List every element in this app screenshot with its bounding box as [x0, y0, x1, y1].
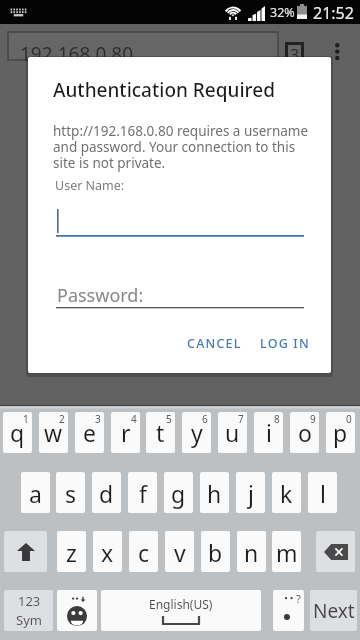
staticText: u [225, 417, 240, 448]
button[interactable]: LOG IN [254, 330, 316, 356]
staticText: 0 [346, 412, 352, 426]
staticText: h [207, 478, 222, 509]
button[interactable]: 8 [254, 412, 283, 453]
button[interactable]: v [165, 531, 194, 572]
staticText: Authentication Required [53, 77, 275, 103]
staticText: l [320, 478, 326, 509]
staticText: English(US) [149, 596, 213, 612]
button[interactable]: 5 [146, 412, 175, 453]
staticText: 4 [131, 412, 137, 426]
staticText: s [65, 478, 77, 509]
staticText: f [139, 478, 147, 509]
staticText: 6 [202, 412, 208, 426]
staticText: 21:52 [313, 2, 354, 24]
button[interactable]: k [272, 472, 301, 513]
button[interactable]: Password: [56, 277, 304, 310]
staticText: y [191, 417, 203, 448]
staticText: 32% [270, 4, 295, 21]
button[interactable]: z [57, 531, 86, 572]
staticText: d [99, 478, 114, 509]
staticText: j [248, 478, 254, 509]
button[interactable]: Shift [4, 531, 47, 572]
staticText: m [276, 537, 298, 568]
staticText: q [10, 417, 25, 448]
button[interactable]: Emoji [57, 590, 97, 631]
staticText: 3 [290, 44, 300, 59]
staticText: v [174, 537, 186, 568]
button[interactable]: c [129, 531, 158, 572]
staticText: i [266, 417, 272, 448]
staticText: z [66, 537, 77, 568]
staticText: a [29, 478, 42, 509]
staticText: 123 [18, 592, 41, 610]
staticText: g [171, 478, 186, 509]
staticText: c [138, 537, 150, 568]
staticText: CANCEL [187, 335, 242, 352]
button[interactable]: Space [101, 590, 261, 631]
staticText: x [101, 537, 114, 568]
staticText: LOG IN [260, 335, 310, 352]
button[interactable]: f [128, 472, 157, 513]
staticText: 8 [274, 412, 280, 426]
button[interactable]: l [308, 472, 337, 513]
button[interactable]: Tabs [288, 45, 301, 60]
button[interactable]: CANCEL [178, 330, 250, 356]
staticText: w [44, 417, 63, 448]
button[interactable]: 9 [290, 412, 319, 453]
button[interactable]: Backspace [316, 531, 355, 572]
button[interactable]: a [21, 472, 50, 513]
staticText: 2 [59, 412, 65, 426]
button[interactable]: Next [310, 590, 357, 631]
staticText: 1 [23, 412, 29, 426]
button[interactable]: 6 [182, 412, 211, 453]
button[interactable]: j [236, 472, 265, 513]
staticText: 7 [238, 412, 244, 426]
staticText: e [83, 417, 96, 448]
button[interactable]: More options [329, 34, 347, 62]
staticText: Password: [57, 283, 144, 308]
button[interactable]: User Name input [56, 202, 304, 239]
button[interactable]: 2 [39, 412, 68, 453]
staticText: k [280, 478, 293, 509]
button[interactable]: Symbols [4, 590, 53, 631]
staticText: p [333, 417, 348, 448]
button[interactable]: 7 [218, 412, 247, 453]
staticText: t [156, 417, 165, 448]
button[interactable]: 0 [326, 412, 355, 453]
staticText: 3 [95, 412, 101, 426]
staticText: User Name: [55, 177, 125, 194]
button[interactable]: 1 [3, 412, 32, 453]
button[interactable]: n [237, 531, 266, 572]
staticText: Next [313, 598, 355, 624]
button[interactable]: s [56, 472, 85, 513]
button[interactable]: g [164, 472, 193, 513]
staticText: r [121, 417, 131, 448]
staticText: http://192.168.0.80 requires a username … [53, 122, 309, 172]
button[interactable]: d [92, 472, 121, 513]
staticText: 192.168.0.80 [20, 41, 134, 67]
staticText: n [244, 537, 259, 568]
button[interactable]: 3 [75, 412, 104, 453]
button[interactable]: Period [273, 590, 304, 631]
staticText: 5 [166, 412, 172, 426]
staticText: Sym [16, 611, 42, 629]
button[interactable]: 4 [111, 412, 140, 453]
button[interactable]: x [93, 531, 122, 572]
staticText: o [298, 417, 312, 448]
button[interactable]: m [272, 531, 301, 572]
button[interactable]: 192.168.0.80 [9, 33, 277, 59]
button[interactable]: h [200, 472, 229, 513]
button[interactable]: b [201, 531, 230, 572]
staticText: 9 [310, 412, 316, 426]
staticText: b [208, 537, 223, 568]
staticText: ? [296, 591, 301, 606]
